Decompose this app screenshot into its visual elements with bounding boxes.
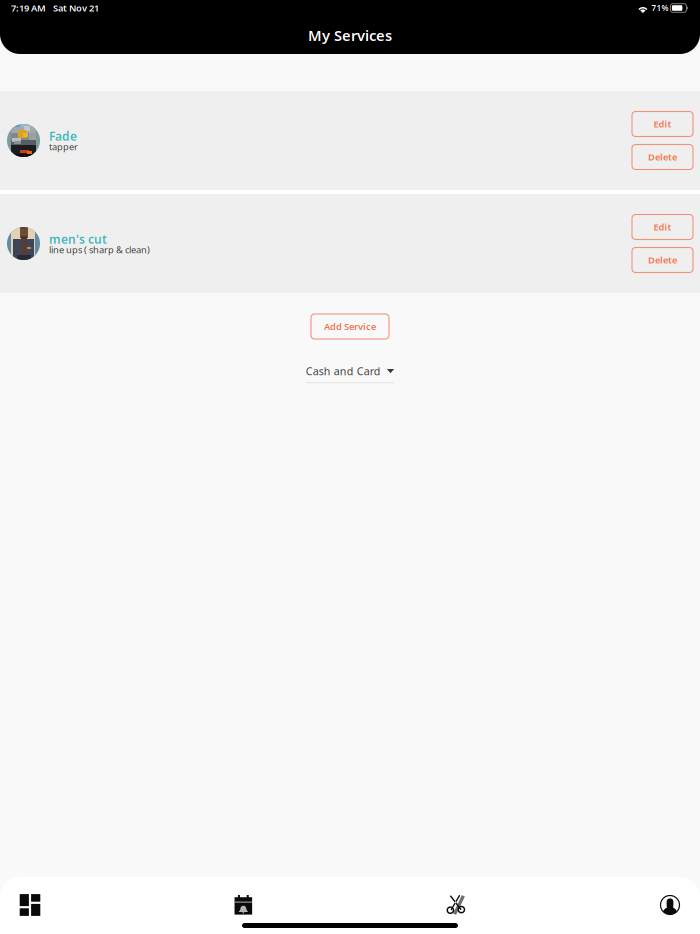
button[interactable]: Dashboard (0, 890, 60, 920)
button[interactable]: Edit (632, 111, 693, 136)
button[interactable]: Cash and Card (306, 364, 394, 383)
staticText: 7:19 AM (11, 2, 46, 14)
staticText: My Services (308, 25, 392, 45)
button[interactable]: Delete (632, 144, 693, 169)
staticText: Fade (49, 128, 77, 144)
staticText: Add Service (324, 320, 376, 333)
staticText: Edit (653, 118, 671, 130)
staticText: Cash and Card (306, 364, 381, 378)
button[interactable]: Profile (640, 890, 700, 920)
button[interactable]: Delete (632, 247, 693, 272)
staticText: Delete (648, 151, 677, 163)
staticText: men's cut (49, 231, 107, 247)
button[interactable]: Services (427, 890, 487, 920)
staticText: line ups ( sharp & clean) (49, 243, 150, 256)
staticText: tapper (49, 140, 78, 153)
button[interactable]: Appointments (213, 890, 273, 920)
staticText: Sat Nov 21 (53, 2, 99, 14)
staticText: Edit (653, 221, 671, 233)
staticText: 71% (651, 3, 668, 13)
button[interactable]: Edit (632, 214, 693, 239)
staticText: Delete (648, 254, 677, 266)
button[interactable]: Add Service (311, 314, 389, 339)
